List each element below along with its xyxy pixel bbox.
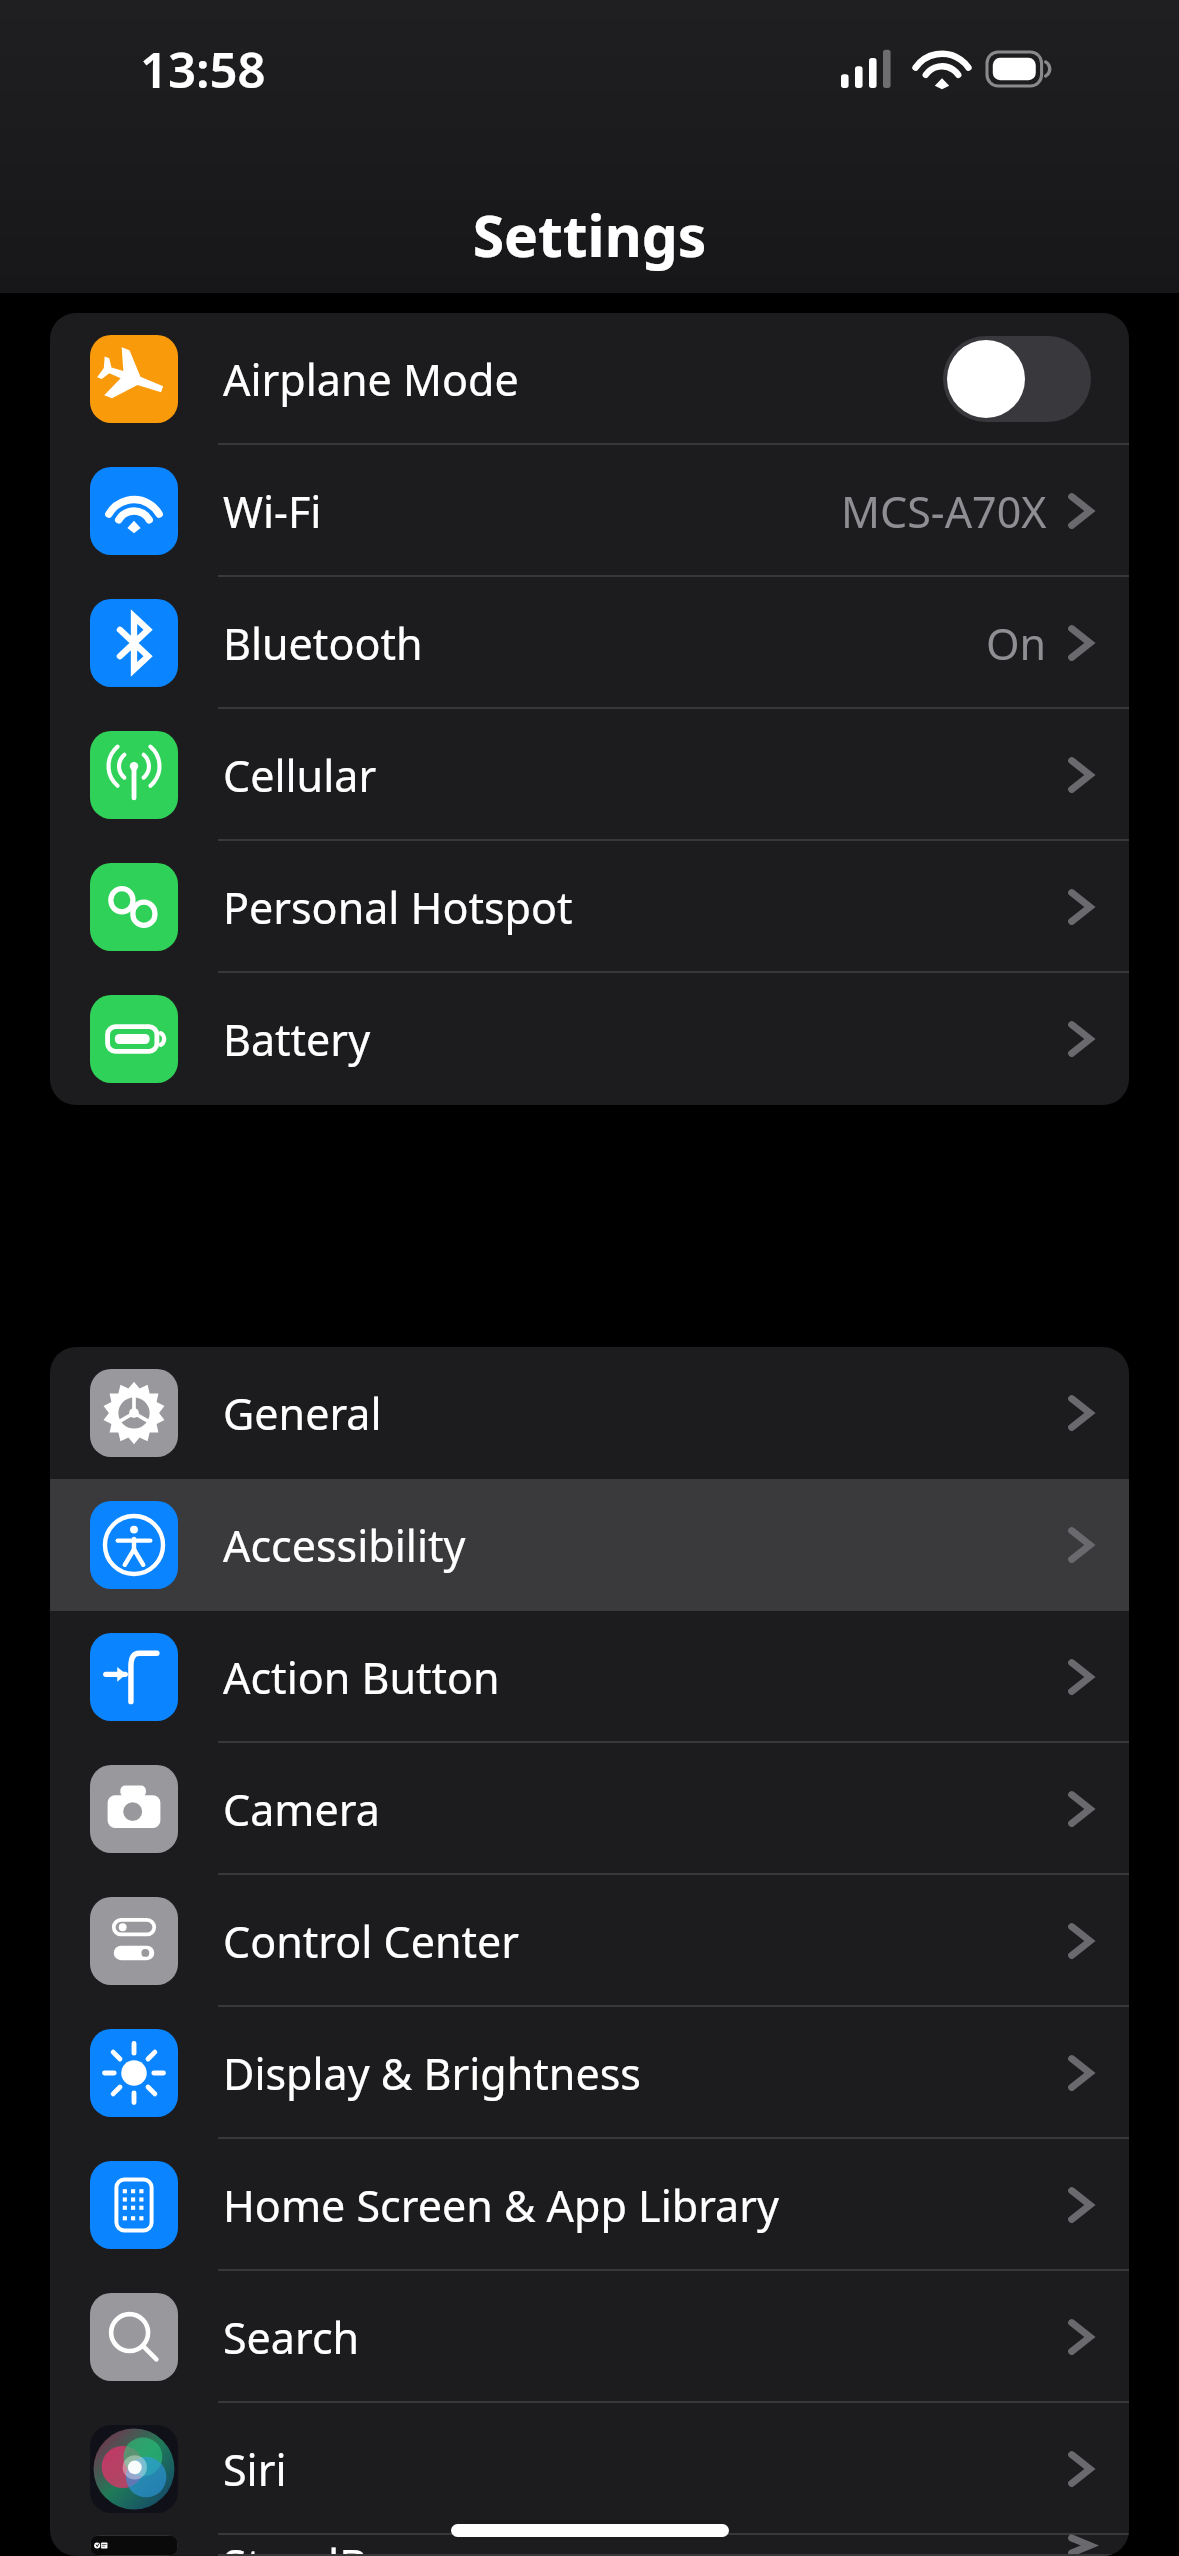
staticText: Settings — [0, 196, 1179, 274]
button[interactable]: Battery — [50, 973, 1129, 1105]
button[interactable]: Personal Hotspot — [50, 841, 1129, 973]
button[interactable]: Home Screen & App Library — [50, 2139, 1129, 2271]
staticText: Wi-Fi — [223, 482, 841, 541]
staticText: General — [223, 1384, 1069, 1443]
button[interactable]: Control Center — [50, 1875, 1129, 2007]
staticText: On — [986, 614, 1047, 673]
staticText: Display & Brightness — [223, 2044, 1069, 2103]
staticText: Accessibility — [223, 1516, 1069, 1575]
staticText: Camera — [223, 1780, 1069, 1839]
staticText: MCS-A70X — [841, 482, 1047, 541]
button[interactable]: Bluetooth — [50, 577, 1129, 709]
button[interactable]: Wi-Fi — [50, 445, 1129, 577]
staticText: Home Screen & App Library — [223, 2176, 1069, 2235]
staticText: Bluetooth — [223, 614, 986, 673]
staticText: Action Button — [223, 1648, 1069, 1707]
button[interactable]: General — [50, 1347, 1129, 1479]
staticText: Personal Hotspot — [223, 878, 1069, 937]
staticText: Control Center — [223, 1912, 1069, 1971]
button[interactable]: Camera — [50, 1743, 1129, 1875]
staticText: 13:58 — [140, 36, 266, 103]
staticText: Search — [223, 2308, 1069, 2367]
button[interactable]: Airplane Mode — [50, 313, 1129, 445]
staticText: StandBy — [223, 2535, 1069, 2556]
staticText: Cellular — [223, 746, 1069, 805]
staticText: Battery — [223, 1010, 1069, 1069]
button[interactable]: Display & Brightness — [50, 2007, 1129, 2139]
button[interactable]: Accessibility — [50, 1479, 1129, 1611]
button[interactable]: Cellular — [50, 709, 1129, 841]
button[interactable]: Siri — [50, 2403, 1129, 2535]
button[interactable]: Action Button — [50, 1611, 1129, 1743]
staticText: Airplane Mode — [223, 350, 943, 409]
staticText: Siri — [223, 2440, 1069, 2499]
button[interactable]: Airplane Mode toggle — [943, 336, 1091, 422]
button[interactable]: Search — [50, 2271, 1129, 2403]
button[interactable]: StandBy — [50, 2535, 1129, 2556]
